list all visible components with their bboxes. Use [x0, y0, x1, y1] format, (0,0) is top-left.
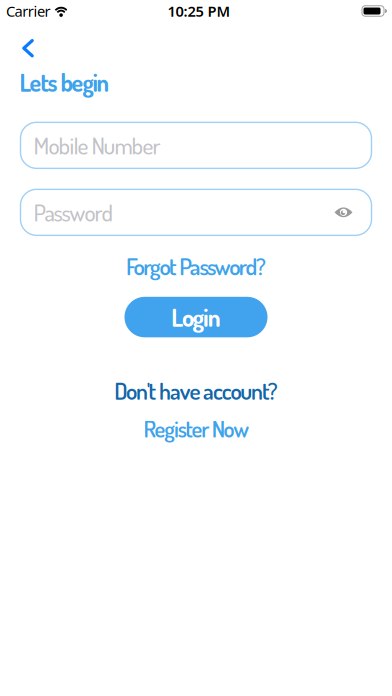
- button[interactable]: Login: [124, 297, 267, 337]
- staticText: Forgot Password?: [126, 251, 266, 281]
- staticText: Password: [33, 198, 113, 227]
- staticText: Don't have account?: [114, 376, 278, 405]
- button[interactable]: Show password: [334, 207, 352, 217]
- staticText: Lets begin: [19, 67, 109, 97]
- staticText: Carrier: [6, 1, 51, 21]
- staticText: Register Now: [144, 414, 248, 443]
- staticText: 10:25 PM: [167, 1, 230, 21]
- staticText: Login: [171, 301, 221, 333]
- button[interactable]: Forgot Password?: [126, 251, 266, 281]
- staticText: Mobile Number: [33, 131, 160, 160]
- button[interactable]: Back: [22, 39, 34, 58]
- button[interactable]: Register Now: [144, 414, 248, 443]
